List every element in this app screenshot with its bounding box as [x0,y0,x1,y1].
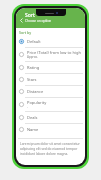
staticText: Approx. [27,55,38,59]
staticText: Popularity [27,100,47,105]
button[interactable]: Default [16,36,85,47]
staticText: Distance [27,89,44,94]
staticText: Sort [25,12,35,19]
button[interactable]: Back [17,16,25,24]
staticText: Name [27,127,39,132]
staticText: Sort by [19,30,32,35]
staticText: Price (Total) from low to high [27,50,81,55]
button[interactable]: Stars [16,74,85,85]
button[interactable]: Deals [16,112,85,123]
button[interactable]: Popularity [16,98,85,111]
staticText: Choose an option [25,19,52,23]
button[interactable]: Name [16,124,85,135]
staticText: Default [27,39,41,44]
staticText: Rating [27,65,40,70]
button[interactable]: Price (Total) from low to high [16,48,85,61]
staticText: . [27,105,28,109]
staticText: Deals [27,115,38,120]
button[interactable]: Rating [16,62,85,73]
button[interactable]: Distance [16,86,85,97]
staticText: Lorem ipsum dolor sit amet consectetur a… [20,142,81,156]
staticText: Stars [27,77,37,82]
